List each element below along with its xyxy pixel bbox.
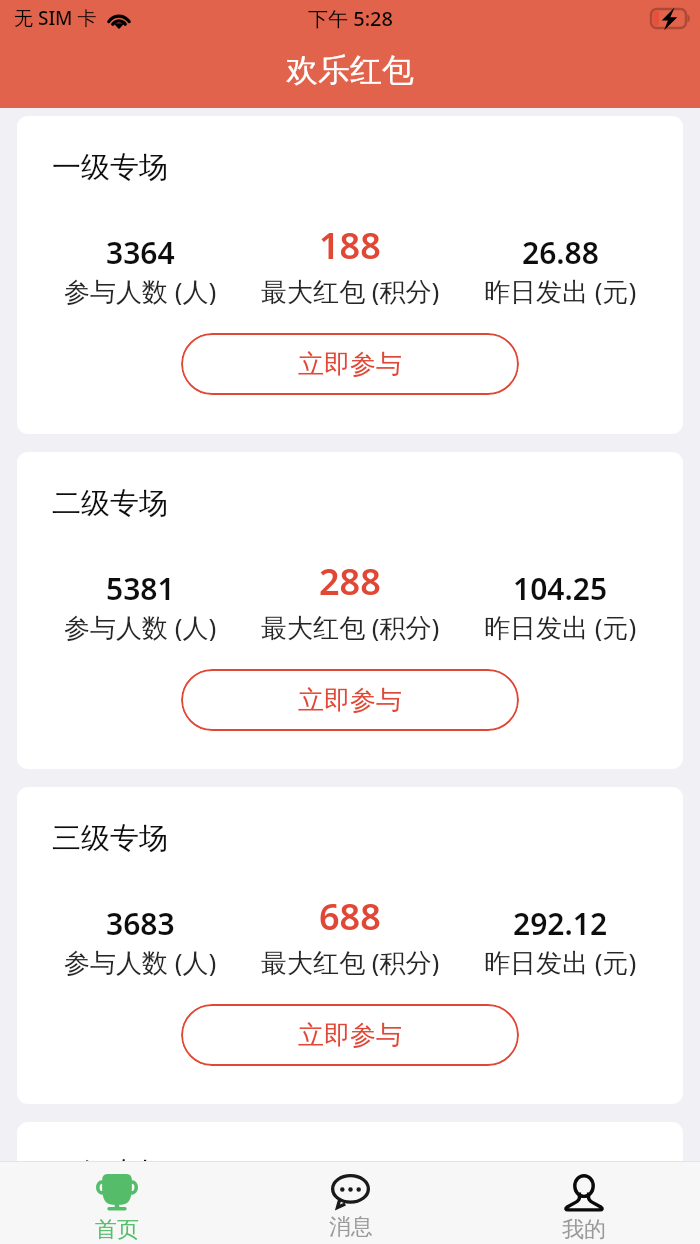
button[interactable]: 立即参与 (181, 669, 519, 731)
button[interactable]: 首页 (0, 1162, 234, 1244)
button[interactable]: 我的 (467, 1162, 700, 1244)
button[interactable]: 立即参与 (181, 1004, 519, 1066)
staticText: 欢乐红包 (286, 50, 414, 90)
staticText: 512.88 (513, 1238, 608, 1244)
staticText: 立即参与 (298, 348, 402, 381)
staticText: 二级专场 (52, 485, 168, 522)
button[interactable]: 三级专场 (17, 787, 683, 1104)
staticText: 最大红包 (积分) (261, 609, 440, 641)
staticText: 参与人数 (人) (64, 609, 217, 641)
staticText: 104.25 (513, 568, 608, 609)
staticText: 昨日发出 (元) (484, 609, 637, 641)
staticText: 参与人数 (人) (64, 273, 217, 305)
staticText: 参与人数 (人) (64, 944, 217, 976)
staticText: 我的 (562, 1216, 606, 1244)
other: Wi-Fi (106, 8, 132, 29)
staticText: 最大红包 (积分) (261, 944, 440, 976)
staticText: 消息 (329, 1213, 373, 1241)
staticText: 昨日发出 (元) (484, 273, 637, 305)
button[interactable]: 二级专场 (17, 452, 683, 769)
staticText: 188 (319, 221, 381, 263)
staticText: 首页 (95, 1216, 139, 1244)
staticText: 26.88 (522, 232, 599, 273)
staticText: 四级专场 (52, 1155, 168, 1192)
staticText: 3364 (106, 232, 175, 273)
staticText: 下午 5:28 (308, 5, 393, 32)
staticText: 292.12 (513, 903, 608, 944)
staticText: 昨日发出 (元) (484, 944, 637, 976)
button[interactable]: 一级专场 (17, 116, 683, 434)
staticText: 立即参与 (298, 1019, 402, 1052)
staticText: 2140 (106, 1238, 175, 1244)
button[interactable]: 消息 (234, 1162, 467, 1244)
staticText: 无 SIM 卡 (14, 5, 97, 31)
staticText: 5381 (106, 568, 175, 609)
other: Battery charging (650, 8, 691, 29)
staticText: 三级专场 (52, 820, 168, 857)
staticText: 288 (319, 557, 381, 599)
button[interactable]: 四级专场 (17, 1122, 683, 1244)
staticText: 888 (319, 1227, 381, 1234)
staticText: 立即参与 (298, 684, 402, 717)
staticText: 最大红包 (积分) (261, 273, 440, 305)
staticText: 3683 (106, 903, 175, 944)
staticText: 688 (319, 892, 381, 934)
button[interactable]: 立即参与 (181, 333, 519, 395)
staticText: 一级专场 (52, 149, 168, 186)
